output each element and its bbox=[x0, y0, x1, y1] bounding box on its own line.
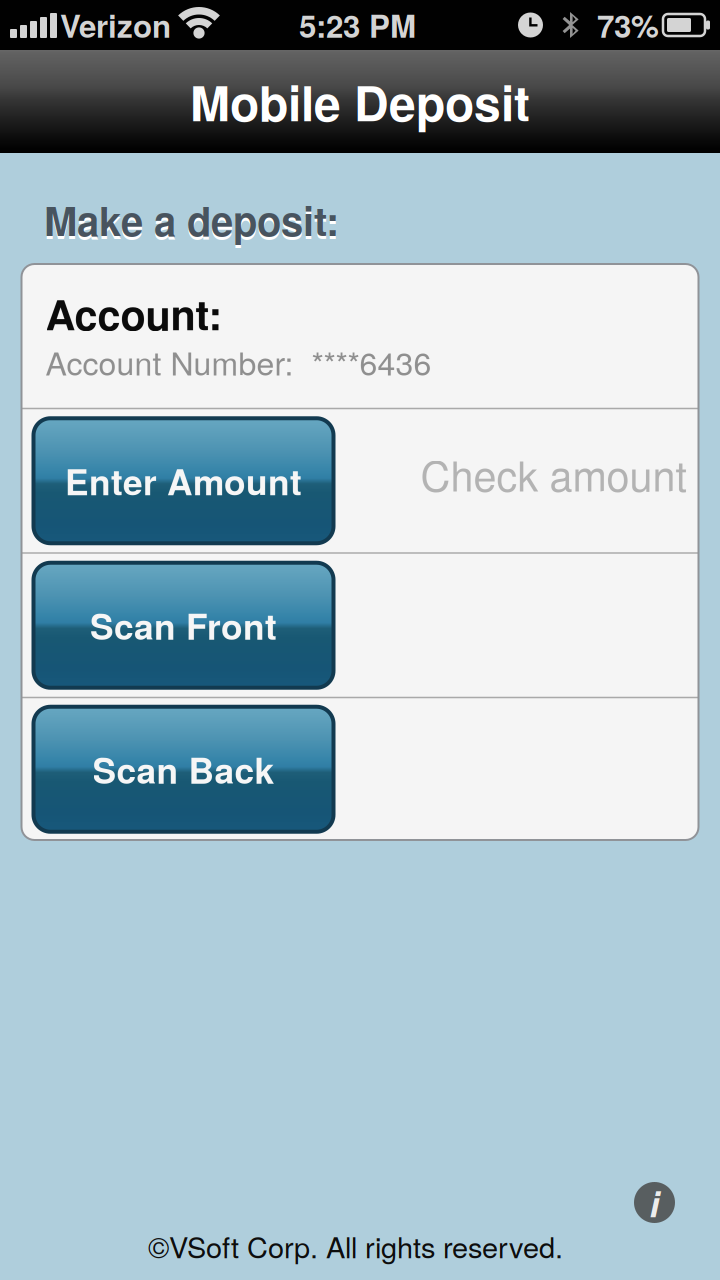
staticText: ©VSoft Corp. All rights reserved. bbox=[148, 1225, 563, 1266]
staticText: Scan Front bbox=[90, 600, 277, 651]
staticText: i bbox=[649, 1177, 659, 1228]
staticText: Check amount bbox=[420, 444, 686, 503]
staticText: Account Number: ****6436 bbox=[45, 339, 431, 385]
staticText: Verizon bbox=[60, 3, 171, 47]
staticText: Account: bbox=[45, 284, 222, 343]
staticText: 73% bbox=[597, 3, 659, 47]
staticText: Scan Back bbox=[92, 744, 274, 795]
staticText: Mobile Deposit bbox=[190, 67, 530, 136]
button[interactable]: Enter Amount bbox=[33, 418, 333, 543]
staticText: Make a deposit: bbox=[44, 191, 339, 248]
button[interactable]: Scan Back bbox=[33, 707, 333, 832]
staticText: Make a deposit: bbox=[44, 194, 339, 251]
staticText: 5:23 PM bbox=[299, 3, 416, 47]
button[interactable]: Scan Front bbox=[33, 563, 333, 688]
staticText: Enter Amount bbox=[65, 455, 302, 506]
button[interactable]: Information bbox=[634, 1182, 675, 1223]
